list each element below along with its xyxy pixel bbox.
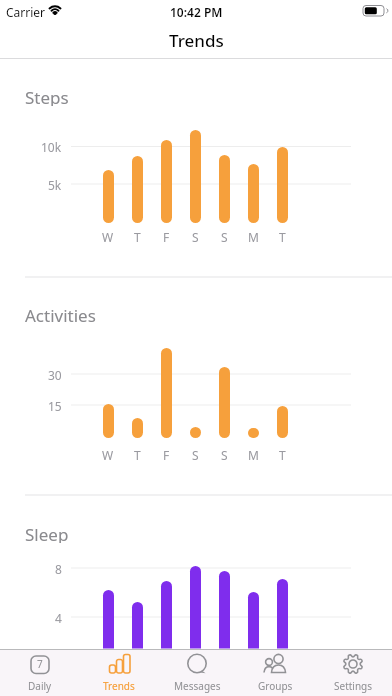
staticText: 10k bbox=[41, 139, 62, 153]
staticText: T bbox=[134, 447, 141, 461]
button[interactable]: Groups bbox=[236, 649, 314, 696]
staticText: M bbox=[248, 229, 259, 243]
staticText: Steps bbox=[25, 86, 69, 106]
staticText: T bbox=[134, 229, 141, 243]
staticText: 30 bbox=[48, 367, 62, 381]
staticText: M bbox=[248, 447, 259, 461]
staticText: 5k bbox=[48, 177, 62, 191]
button[interactable]: 7 bbox=[0, 649, 79, 696]
staticText: Activities bbox=[25, 304, 96, 324]
staticText: 7 bbox=[37, 657, 43, 671]
staticText: S bbox=[192, 229, 199, 243]
staticText: Settings bbox=[334, 679, 373, 693]
staticText: W bbox=[102, 229, 114, 243]
staticText: F bbox=[163, 447, 170, 461]
staticText: S bbox=[221, 229, 228, 243]
button[interactable]: Trends bbox=[79, 649, 158, 696]
staticText: T bbox=[279, 229, 286, 243]
staticText: F bbox=[163, 229, 170, 243]
staticText: S bbox=[192, 447, 199, 461]
staticText: S bbox=[221, 447, 228, 461]
staticText: Groups bbox=[258, 679, 293, 693]
staticText: W bbox=[102, 447, 114, 461]
staticText: Carrier bbox=[6, 4, 46, 18]
staticText: Messages bbox=[174, 679, 221, 693]
staticText: Trends bbox=[103, 679, 135, 693]
staticText: T bbox=[279, 447, 286, 461]
staticText: 4 bbox=[55, 610, 62, 624]
staticText: 10:42 PM bbox=[170, 4, 223, 18]
button[interactable]: Messages bbox=[158, 649, 236, 696]
staticText: 15 bbox=[48, 398, 62, 412]
staticText: Daily bbox=[28, 679, 52, 693]
staticText: 8 bbox=[55, 561, 62, 575]
staticText: Sleep bbox=[25, 523, 69, 543]
staticText: Trends bbox=[169, 29, 224, 52]
button[interactable]: Settings bbox=[314, 649, 392, 696]
